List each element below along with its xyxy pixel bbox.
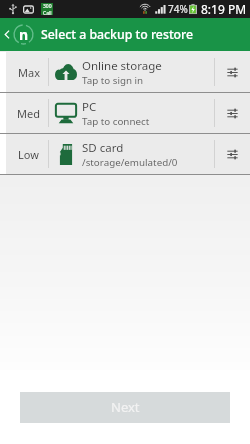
staticText: Tap to sign in [82, 74, 144, 87]
staticText: Med [17, 106, 40, 121]
button[interactable]: Next [20, 392, 230, 423]
staticText: 8:19 PM [201, 1, 247, 17]
staticText: Select a backup to restore [41, 26, 194, 43]
staticText: Tap to connect [82, 115, 150, 128]
staticText: Low [18, 147, 39, 162]
staticText: 300 [43, 3, 52, 10]
button[interactable]: Settings [215, 134, 250, 174]
button[interactable]: Max [0, 52, 250, 93]
button[interactable]: Low [0, 134, 250, 175]
staticText: Next [111, 398, 140, 416]
staticText: n [19, 25, 29, 44]
button[interactable]: Settings [215, 93, 250, 133]
button[interactable]: Back [0, 24, 36, 45]
button[interactable]: Settings [215, 52, 250, 92]
staticText: Online storage [82, 58, 162, 74]
staticText: SD card [82, 140, 124, 156]
staticText: Call [43, 10, 52, 15]
staticText: Max [18, 65, 40, 80]
staticText: PC [82, 99, 97, 115]
staticText: /storage/emulated/0 [82, 156, 178, 169]
staticText: 74% [168, 2, 188, 16]
button[interactable]: Med [0, 93, 250, 134]
